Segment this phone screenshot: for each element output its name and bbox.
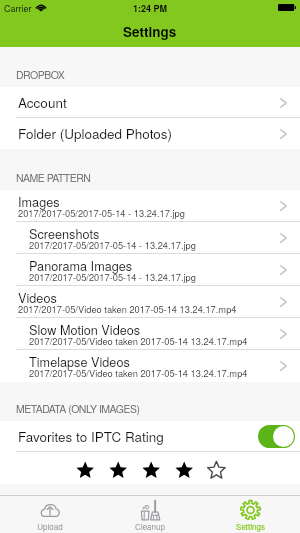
staticText: Screenshots — [29, 224, 100, 242]
staticText: Cleanup — [135, 521, 165, 532]
other: Battery full — [278, 4, 296, 11]
staticText: Settings — [123, 22, 177, 41]
button[interactable]: Panorama Images — [0, 254, 300, 286]
button[interactable]: Upload — [0, 495, 100, 533]
other: Wi-Fi — [37, 4, 45, 11]
staticText: Slow Motion Videos — [29, 320, 141, 338]
staticText: METADATA (ONLY IMAGES) — [16, 401, 140, 416]
staticText: DROPBOX — [16, 67, 65, 82]
staticText: Settings — [236, 521, 265, 532]
staticText: 2017/2017-05/Video taken 2017-05-14 13.2… — [29, 334, 248, 347]
staticText: Images — [18, 192, 60, 210]
button[interactable]: Videos — [0, 286, 300, 318]
button[interactable]: Screenshots — [0, 222, 300, 254]
staticText: 2017/2017-05/Video taken 2017-05-14 13.2… — [29, 366, 248, 379]
staticText: Upload — [37, 521, 63, 532]
button[interactable]: Favorites to IPTC Rating toggle — [258, 425, 295, 448]
staticText: Videos — [18, 288, 57, 306]
staticText: Carrier — [4, 2, 32, 15]
staticText: Favorites to IPTC Rating — [18, 427, 164, 446]
staticText: Panorama Images — [29, 256, 133, 274]
button[interactable]: Cleanup — [100, 495, 200, 533]
staticText: 2017/2017-05/2017-05-14 - 13.24.17.jpg — [29, 238, 196, 251]
button[interactable]: Folder (Uploaded Photos) — [0, 118, 300, 149]
staticText: 1:24 PM — [133, 2, 168, 15]
staticText: Folder (Uploaded Photos) — [18, 124, 173, 143]
staticText: 2017/2017-05/2017-05-14 - 13.24.17.jpg — [29, 270, 196, 283]
staticText: 2017/2017-05/Video taken 2017-05-14 13.2… — [18, 302, 237, 315]
staticText: 2017/2017-05/2017-05-14 - 13.24.17.jpg — [18, 206, 185, 219]
button[interactable]: Timelapse Videos — [0, 350, 300, 382]
button[interactable]: Settings — [200, 495, 300, 533]
button[interactable]: Slow Motion Videos — [0, 318, 300, 350]
staticText: Timelapse Videos — [29, 352, 130, 370]
button[interactable]: Account — [0, 87, 300, 118]
button[interactable]: Rating 4 of 5 stars — [0, 452, 300, 484]
button[interactable]: Favorites to IPTC Rating — [0, 421, 300, 452]
button[interactable]: Images — [0, 190, 300, 222]
staticText: Account — [18, 93, 67, 112]
staticText: NAME PATTERN — [16, 170, 91, 185]
